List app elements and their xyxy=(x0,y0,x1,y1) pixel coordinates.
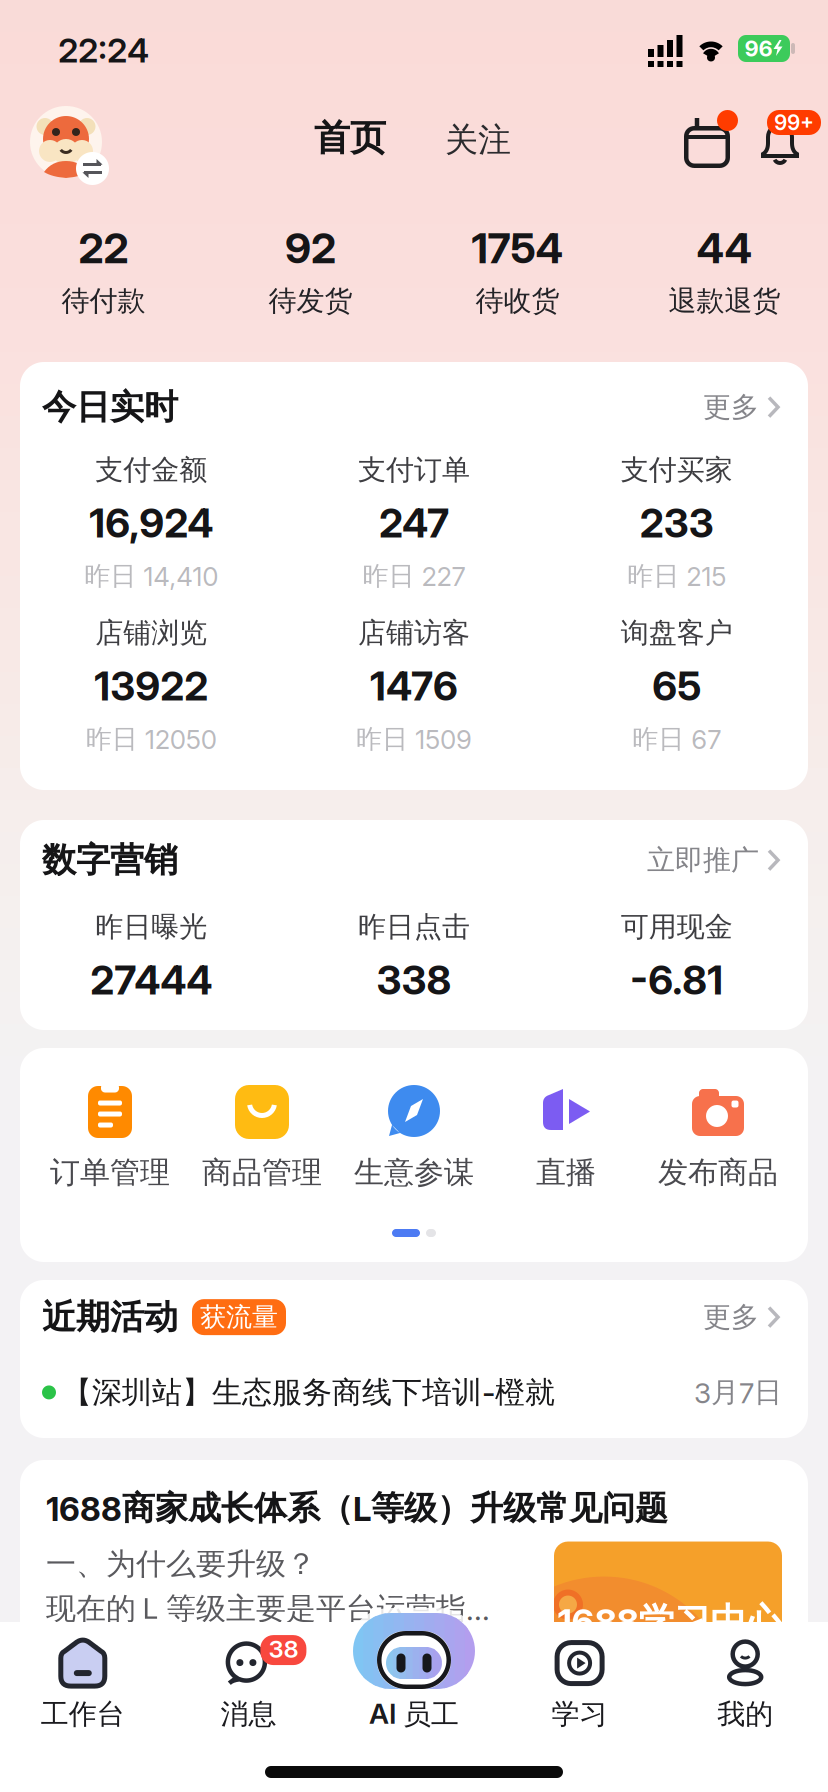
staticText: 3月7日 xyxy=(694,1375,782,1410)
button[interactable]: 商品管理 xyxy=(186,1084,338,1191)
button[interactable]: 1754 xyxy=(414,224,621,318)
button[interactable]: 学习 xyxy=(497,1635,662,1731)
staticText: 待发货 xyxy=(268,284,352,318)
staticText: 338 xyxy=(376,956,451,1004)
staticText: 昨日 12050 xyxy=(86,723,217,755)
staticText: 昨日 227 xyxy=(362,560,465,592)
staticText: 待收货 xyxy=(475,284,559,318)
staticText: 233 xyxy=(640,499,714,547)
button[interactable]: 首页 xyxy=(280,116,420,160)
staticText: 昨日曝光 xyxy=(95,910,207,944)
button[interactable]: 22 xyxy=(0,224,207,318)
button[interactable]: 直播 xyxy=(490,1084,642,1191)
staticText: 店铺访客 xyxy=(358,616,470,650)
staticText: 发布商品 xyxy=(658,1154,778,1191)
staticText: 立即推广 xyxy=(647,843,759,877)
button[interactable]: 我的 xyxy=(662,1635,828,1731)
staticText: 1688学习中心 xyxy=(557,1599,782,1644)
staticText: 可用现金 xyxy=(621,910,733,944)
staticText: 96 xyxy=(744,35,772,61)
staticText: 65 xyxy=(652,662,701,710)
staticText: 数字营销 xyxy=(42,839,178,881)
staticText: 商品管理 xyxy=(202,1154,322,1191)
staticText: 学习 xyxy=(552,1697,608,1731)
button[interactable]: 生意参谋 xyxy=(338,1084,490,1191)
staticText: 昨日 14,410 xyxy=(84,560,218,592)
button[interactable]: 订单管理 xyxy=(34,1084,186,1191)
staticText: -6.81 xyxy=(630,956,723,1004)
staticText: 昨日点击 xyxy=(358,910,470,944)
staticText: 247 xyxy=(379,499,449,547)
staticText: 近期活动 xyxy=(42,1296,178,1338)
button[interactable]: 日历 xyxy=(684,114,740,170)
staticText: 待付款 xyxy=(61,284,145,318)
staticText: 16,924 xyxy=(89,499,213,547)
staticText: 1688商家成长体系（L等级）升级常见问题 xyxy=(46,1488,668,1528)
staticText: 获流量 xyxy=(200,1301,278,1333)
staticText: 店铺浏览 xyxy=(95,616,207,650)
staticText: 44 xyxy=(696,223,752,273)
staticText: 询盘客户 xyxy=(621,616,733,650)
staticText: 一、为什么要升级？ xyxy=(46,1545,316,1582)
staticText: 直播 xyxy=(536,1154,596,1191)
button[interactable]: 切换账号 xyxy=(30,106,110,186)
button[interactable]: 更多 xyxy=(703,1300,782,1334)
staticText: 退款退货 xyxy=(668,284,780,318)
staticText: 1754 xyxy=(471,223,563,273)
button[interactable]: 关注 xyxy=(408,118,548,162)
button[interactable]: 1688商家成长体系（L等级）升级常见问题 xyxy=(20,1460,808,1792)
staticText: AI 员工 xyxy=(369,1697,459,1732)
button[interactable]: 发布商品 xyxy=(642,1084,794,1191)
button[interactable]: 92 xyxy=(207,224,414,318)
button[interactable]: 38 xyxy=(166,1635,331,1731)
button[interactable]: AI 员工 xyxy=(331,1635,497,1732)
button[interactable]: 更多 xyxy=(703,390,782,424)
staticText: 昨日 215 xyxy=(627,560,726,592)
staticText: 38 xyxy=(268,1635,298,1663)
staticText: 更多 xyxy=(703,1300,759,1334)
staticText: 13922 xyxy=(94,662,208,710)
staticText: 22 xyxy=(78,223,128,273)
staticText: 工作台 xyxy=(41,1697,125,1731)
staticText: 首页 xyxy=(314,116,386,160)
staticText: 关注 xyxy=(445,120,511,160)
staticText: 生意参谋 xyxy=(354,1154,474,1191)
staticText: 消息 xyxy=(220,1697,276,1731)
staticText: 【深圳站】生态服务商线下培训-橙就 xyxy=(62,1374,555,1411)
staticText: 今日实时 xyxy=(42,386,178,428)
staticText: 支付订单 xyxy=(358,453,470,487)
staticText: 支付买家 xyxy=(621,453,733,487)
button[interactable]: 工作台 xyxy=(0,1635,166,1731)
staticText: 支付金额 xyxy=(95,453,207,487)
staticText: 99+ xyxy=(774,110,814,135)
staticText: 我的 xyxy=(717,1697,773,1731)
staticText: 更多 xyxy=(703,390,759,424)
button[interactable]: 立即推广 xyxy=(647,843,782,877)
staticText: 92 xyxy=(285,223,336,273)
staticText: 1476 xyxy=(370,662,458,710)
button[interactable]: 通知 xyxy=(760,110,822,168)
staticText: 昨日 1509 xyxy=(356,723,472,755)
staticText: 22:24 xyxy=(58,30,149,70)
staticText: 订单管理 xyxy=(50,1154,170,1191)
staticText: 昨日 67 xyxy=(632,723,721,755)
staticText: 现在的Ｌ等级主要是平台运营指... xyxy=(46,1590,490,1627)
button[interactable]: 44 xyxy=(621,224,828,318)
button[interactable]: 【深圳站】生态服务商线下培训-橙就 xyxy=(20,1374,808,1411)
staticText: 27444 xyxy=(90,956,212,1004)
